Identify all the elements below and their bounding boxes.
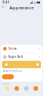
button[interactable]: Tangerine bbox=[33, 86, 38, 91]
button[interactable] bbox=[1, 61, 42, 68]
button[interactable]: Amber bbox=[14, 86, 19, 91]
staticText: Appearance bbox=[9, 5, 33, 10]
button[interactable]: Back bbox=[2, 5, 6, 10]
button[interactable]: More bbox=[37, 5, 41, 10]
staticText: Accent colour bbox=[3, 69, 22, 73]
staticText: 9:41 bbox=[3, 1, 10, 4]
button[interactable]: Sand bbox=[5, 86, 9, 91]
button[interactable]: Theme bbox=[1, 45, 42, 53]
staticText: PALETTE bbox=[2, 83, 9, 85]
staticText: Theme bbox=[8, 47, 17, 50]
button[interactable]: Slate bbox=[24, 86, 29, 91]
staticText: Night Shift bbox=[8, 55, 23, 59]
button[interactable]: Night Shift bbox=[1, 53, 42, 61]
